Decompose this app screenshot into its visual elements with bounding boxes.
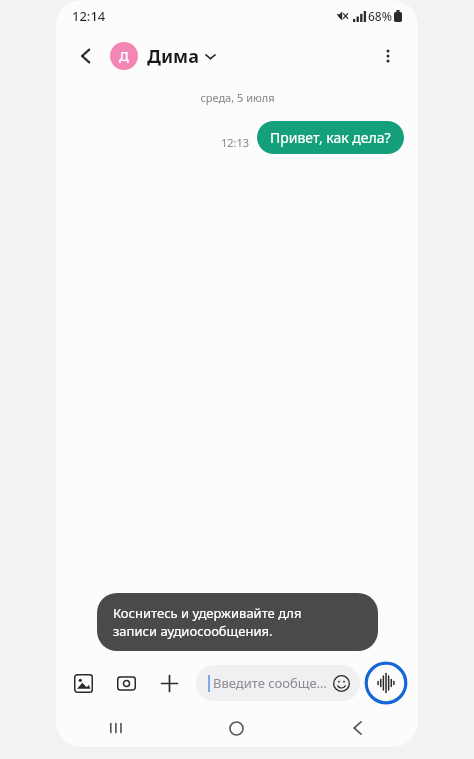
button[interactable]: Home bbox=[176, 709, 297, 747]
staticText: Дима bbox=[147, 44, 199, 69]
staticText: Д bbox=[119, 47, 129, 65]
button[interactable]: Add attachment bbox=[154, 668, 184, 698]
button[interactable]: More options bbox=[372, 40, 404, 72]
staticText: 68% bbox=[368, 8, 392, 24]
staticText: Привет, как дела? bbox=[270, 128, 391, 147]
button[interactable]: Record audio message bbox=[364, 661, 408, 705]
button[interactable]: Camera bbox=[111, 668, 141, 698]
button[interactable]: Back bbox=[297, 709, 418, 747]
staticText: Введите сообще… bbox=[213, 674, 327, 692]
staticText: 12:14 bbox=[72, 7, 106, 25]
button[interactable]: Recents bbox=[56, 709, 176, 747]
staticText: Коснитесь и удерживайте для записи аудио… bbox=[113, 604, 302, 640]
button[interactable]: Привет, как дела? bbox=[257, 121, 404, 154]
button[interactable]: Введите сообще… bbox=[196, 665, 360, 701]
button[interactable]: Д bbox=[110, 42, 216, 70]
button[interactable]: Back bbox=[70, 40, 102, 72]
button[interactable]: Emoji bbox=[330, 672, 352, 694]
staticText: 12:13 bbox=[221, 135, 250, 150]
staticText: среда, 5 июля bbox=[200, 90, 275, 105]
button[interactable]: Gallery bbox=[68, 668, 98, 698]
